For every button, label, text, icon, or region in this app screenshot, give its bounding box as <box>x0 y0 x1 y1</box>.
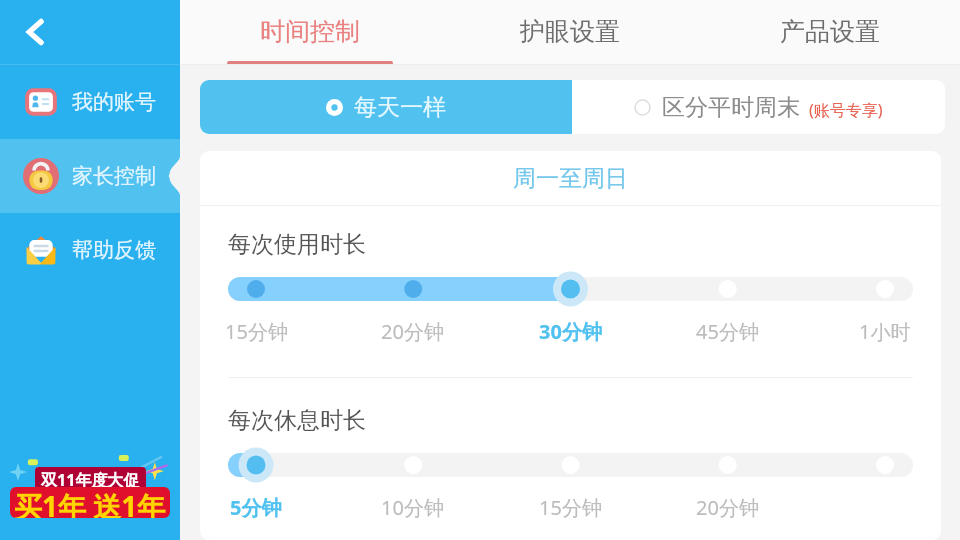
staticText: 20分钟 <box>381 318 444 345</box>
staticText: 45分钟 <box>696 318 759 345</box>
staticText: 周一至周日 <box>513 164 628 193</box>
staticText: 护眼设置 <box>520 16 620 47</box>
staticText: 1小时 <box>859 318 911 345</box>
staticText: 帮助反馈 <box>72 237 156 263</box>
button[interactable]: 产品设置 <box>700 0 960 65</box>
button[interactable]: Back <box>0 0 180 64</box>
staticText: 15分钟 <box>225 318 288 345</box>
button[interactable]: 每次使用时长 <box>228 277 913 301</box>
button[interactable]: 时间控制 <box>180 0 440 65</box>
button[interactable]: 每次休息时长 <box>228 453 913 477</box>
staticText: 30分钟 <box>539 318 602 345</box>
button[interactable]: 我的账号 <box>0 65 180 139</box>
staticText: (账号专享) <box>809 99 883 121</box>
staticText: 5分钟 <box>230 494 282 521</box>
staticText: 每次使用时长 <box>228 230 366 259</box>
staticText: 每次休息时长 <box>228 406 366 435</box>
staticText: 20分钟 <box>696 494 759 521</box>
staticText: 每天一样 <box>354 93 446 122</box>
button[interactable]: 帮助反馈 <box>0 213 180 287</box>
staticText: 产品设置 <box>780 16 880 47</box>
staticText: 双11年度大促 <box>41 469 140 491</box>
staticText: 10分钟 <box>381 494 444 521</box>
button[interactable]: 每天一样 <box>200 80 572 134</box>
button[interactable]: 家长控制 <box>0 139 180 213</box>
button[interactable]: 护眼设置 <box>440 0 700 65</box>
staticText: 买1年 送1年 <box>14 487 166 518</box>
staticText: 时间控制 <box>260 16 360 47</box>
button[interactable]: 双11年度大促 <box>0 448 180 534</box>
staticText: 家长控制 <box>72 163 156 189</box>
staticText: 区分平时周末 <box>662 93 800 122</box>
staticText: 我的账号 <box>72 89 156 115</box>
button[interactable]: 区分平时周末 <box>572 80 945 134</box>
staticText: 15分钟 <box>539 494 602 521</box>
